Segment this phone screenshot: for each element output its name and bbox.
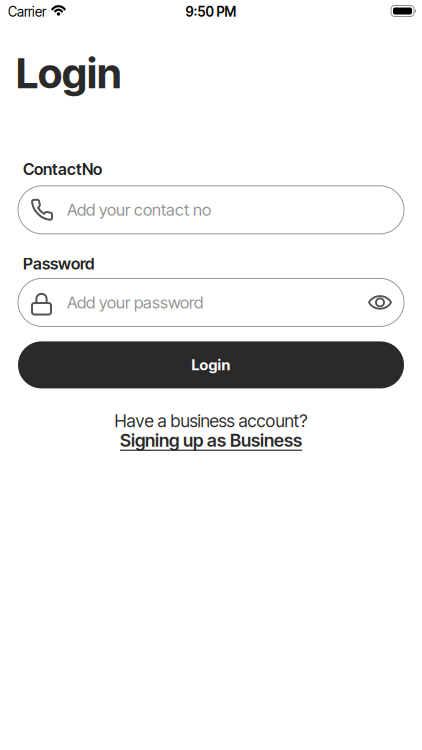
staticText: Add your password (67, 292, 203, 312)
button[interactable]: Show password (368, 294, 404, 311)
staticText: Signing up as Business (120, 429, 302, 451)
staticText: Carrier (8, 4, 46, 20)
button[interactable]: ContactNo (18, 186, 404, 234)
staticText: ContactNo (23, 159, 102, 179)
staticText: Add your contact no (67, 200, 211, 220)
staticText: Login (191, 356, 230, 374)
button[interactable]: Login (18, 341, 404, 388)
staticText: Password (23, 254, 94, 273)
staticText: Have a business account? (114, 410, 307, 431)
staticText: 9:50 PM (185, 4, 236, 20)
button[interactable]: Password (18, 278, 404, 326)
staticText: Login (16, 48, 122, 98)
button[interactable]: Signing up as Business (120, 429, 302, 451)
